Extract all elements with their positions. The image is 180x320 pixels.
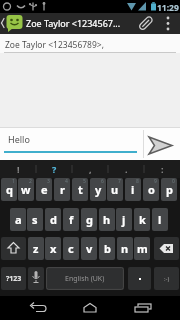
button[interactable]: l <box>152 208 168 231</box>
button[interactable] <box>0 13 24 34</box>
button[interactable]: b <box>99 237 115 260</box>
staticText: d <box>50 212 57 227</box>
button[interactable]: : <box>144 160 180 178</box>
staticText: Hello <box>8 133 30 145</box>
staticText: ? <box>52 163 57 175</box>
button[interactable]: p <box>161 178 177 201</box>
button[interactable]: o <box>143 178 159 201</box>
staticText: 6 <box>101 178 104 185</box>
button[interactable]: ?123 <box>1 267 26 290</box>
button[interactable]: c <box>63 237 79 260</box>
button[interactable] <box>128 267 151 290</box>
staticText: z <box>33 241 39 256</box>
staticText: b <box>104 241 111 256</box>
staticText: Zoe Taylor <1234567... <box>26 17 134 29</box>
staticText: y <box>95 182 102 197</box>
button[interactable]: k <box>134 208 150 231</box>
button[interactable] <box>20 296 50 320</box>
staticText: English (UK) <box>65 274 105 284</box>
staticText: q <box>6 182 13 197</box>
staticText: :-) <box>164 275 170 283</box>
staticText: a <box>15 212 22 227</box>
staticText: 3 <box>47 178 50 185</box>
button[interactable]: ? <box>36 160 72 178</box>
staticText: 8 <box>136 178 139 185</box>
staticText: 2 <box>29 178 32 185</box>
button[interactable]: y <box>90 178 106 201</box>
button[interactable]: a <box>10 208 26 231</box>
button[interactable]: u <box>107 178 123 201</box>
button[interactable]: g <box>81 208 97 231</box>
button[interactable]: Zoe Taylor <123456789>, <box>0 34 180 53</box>
staticText: 5 <box>83 178 86 185</box>
button[interactable] <box>135 13 156 34</box>
staticText: s <box>32 212 38 227</box>
staticText: c <box>68 241 74 256</box>
staticText: 4 <box>65 178 68 185</box>
staticText: 9 <box>154 178 157 185</box>
button[interactable]: i <box>125 178 141 201</box>
button[interactable]: w <box>18 178 34 201</box>
button[interactable] <box>1 237 26 260</box>
button[interactable]: q <box>1 178 17 201</box>
button[interactable]: Hello <box>0 128 143 160</box>
button[interactable] <box>74 296 104 320</box>
button[interactable]: j <box>116 208 132 231</box>
staticText: v <box>86 241 93 256</box>
staticText: w <box>21 182 31 197</box>
staticText: 11:29 <box>157 2 179 14</box>
staticText: 7 <box>118 178 121 185</box>
staticText: u <box>111 182 119 197</box>
staticText: i <box>131 182 135 197</box>
button[interactable]: x <box>45 237 61 260</box>
staticText: p <box>166 182 173 197</box>
button[interactable]: h <box>99 208 115 231</box>
button[interactable] <box>158 13 180 34</box>
staticText: t <box>78 182 83 197</box>
staticText: k <box>139 212 146 227</box>
button[interactable]: . <box>108 160 144 178</box>
button[interactable]: f <box>63 208 79 231</box>
staticText: h <box>103 212 111 227</box>
staticText: 0 <box>172 178 175 185</box>
staticText: r <box>60 182 65 197</box>
button[interactable]: , <box>72 160 108 178</box>
button[interactable]: m <box>134 237 150 260</box>
button[interactable] <box>128 296 158 320</box>
staticText: Zoe Taylor <123456789>, <box>5 39 104 51</box>
button[interactable]: r <box>54 178 70 201</box>
staticText: j <box>122 212 126 227</box>
button[interactable]: d <box>45 208 61 231</box>
button[interactable] <box>28 267 44 290</box>
button[interactable]: z <box>28 237 44 260</box>
staticText: : <box>161 163 164 175</box>
staticText: f <box>69 212 74 227</box>
staticText: , <box>89 163 92 175</box>
staticText: x <box>50 241 57 256</box>
button[interactable] <box>144 127 180 160</box>
staticText: 1 <box>12 178 15 185</box>
staticText: n <box>121 241 129 256</box>
button[interactable]: e <box>36 178 52 201</box>
staticText: . <box>125 163 128 175</box>
button[interactable]: t <box>72 178 88 201</box>
button[interactable]: v <box>81 237 97 260</box>
button[interactable]: n <box>117 237 133 260</box>
staticText: ! <box>17 163 20 175</box>
button[interactable]: English (UK) <box>46 267 124 290</box>
staticText: e <box>41 182 48 197</box>
staticText: l <box>158 212 162 227</box>
button[interactable] <box>154 237 179 260</box>
button[interactable]: s <box>27 208 43 231</box>
staticText: ?123 <box>6 274 22 284</box>
staticText: m <box>137 241 148 256</box>
button[interactable]: :-) <box>154 267 179 290</box>
button[interactable]: ! <box>0 160 36 178</box>
staticText: o <box>148 182 155 197</box>
staticText: g <box>86 212 93 227</box>
